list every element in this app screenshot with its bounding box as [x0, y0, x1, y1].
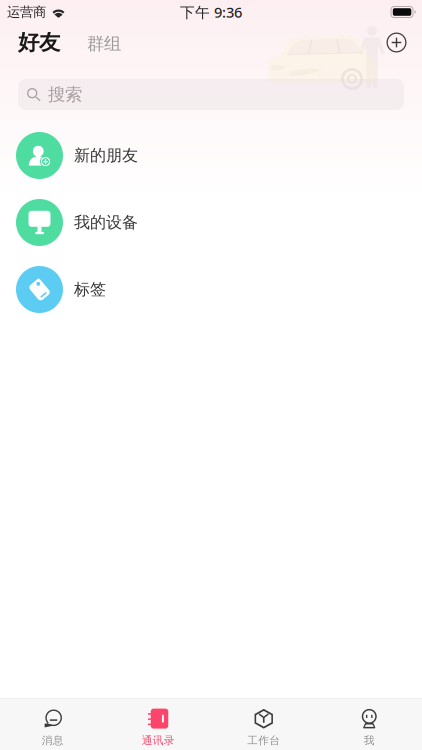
staticText: 新的朋友 — [74, 146, 138, 165]
button[interactable]: 消息 — [0, 699, 105, 750]
staticText: 下午 9:36 — [180, 2, 242, 22]
staticText: 我的设备 — [74, 213, 138, 232]
button[interactable]: Add — [386, 32, 407, 53]
staticText: 标签 — [74, 280, 106, 299]
staticText: 我 — [364, 734, 375, 747]
staticText: 好友 — [18, 29, 60, 56]
staticText: 群组 — [87, 33, 121, 54]
staticText: 工作台 — [247, 734, 280, 747]
button[interactable]: 我的设备 — [0, 189, 422, 256]
button[interactable]: 通讯录 — [105, 699, 211, 750]
button[interactable]: 我 — [316, 699, 422, 750]
button[interactable]: 好友 — [18, 29, 60, 56]
button[interactable]: 标签 — [0, 256, 422, 323]
button[interactable]: 群组 — [60, 33, 121, 54]
staticText: 运营商 — [7, 4, 46, 20]
staticText: 消息 — [42, 734, 64, 747]
staticText: 通讯录 — [142, 734, 175, 747]
staticText: 搜索 — [48, 84, 82, 105]
button[interactable]: 工作台 — [211, 699, 316, 750]
button[interactable]: 新的朋友 — [0, 122, 422, 189]
